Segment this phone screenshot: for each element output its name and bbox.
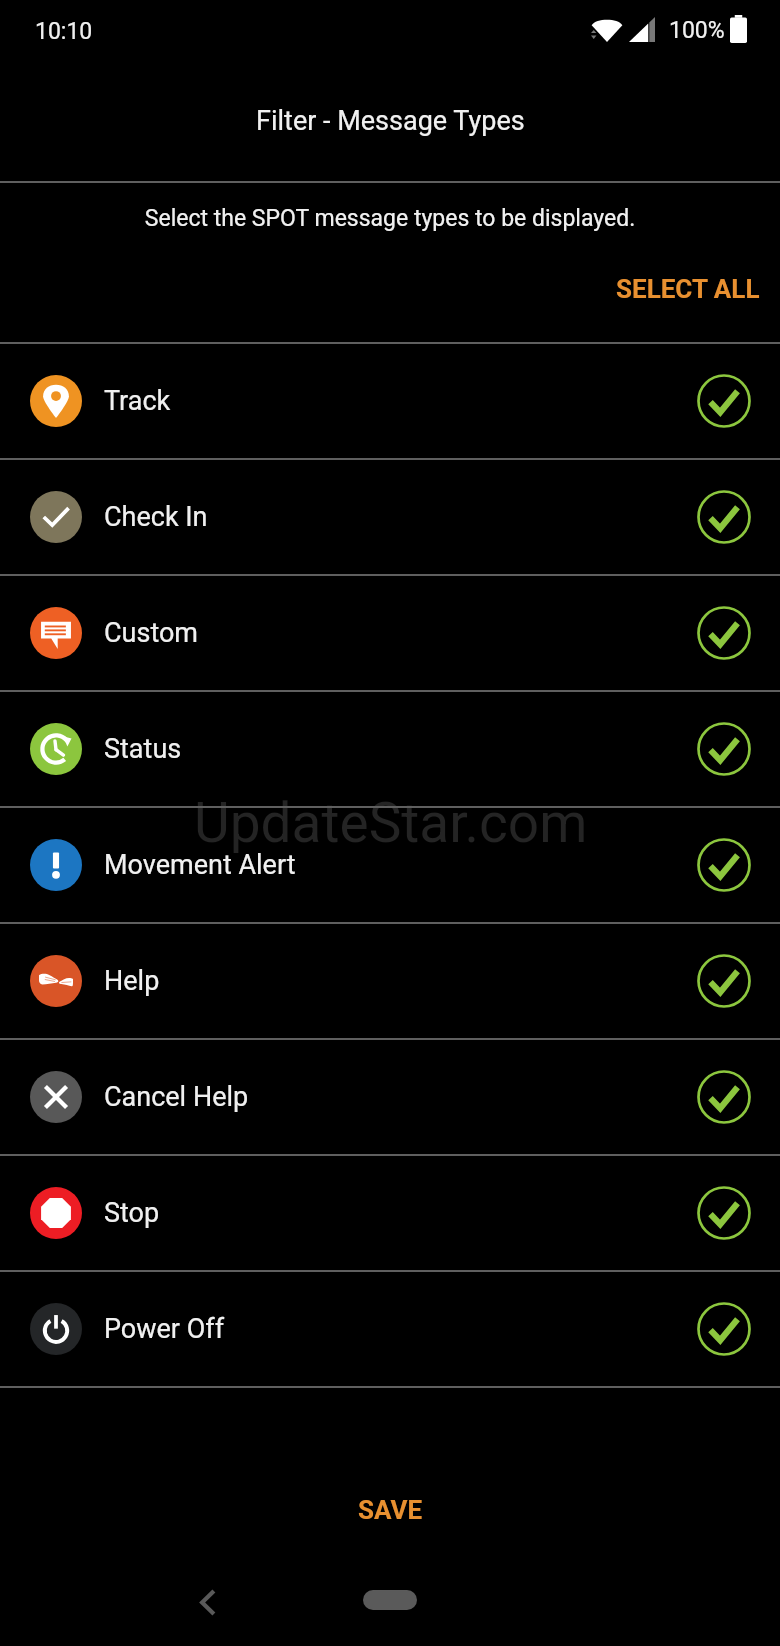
staticText: Filter - Message Types <box>256 105 525 137</box>
staticText: Custom <box>104 617 199 649</box>
button[interactable]: Custom <box>0 576 780 690</box>
button[interactable]: Status <box>0 692 780 806</box>
button[interactable]: Check In <box>0 460 780 574</box>
staticText: UpdateStar.com <box>194 791 588 855</box>
staticText: 100% <box>669 17 725 44</box>
button[interactable]: SAVE <box>330 1485 451 1535</box>
staticText: SAVE <box>358 1495 423 1525</box>
staticText: Select the SPOT message types to be disp… <box>0 205 780 232</box>
button[interactable]: Back <box>182 1576 234 1628</box>
button[interactable]: Track <box>0 344 780 458</box>
staticText: Stop <box>104 1197 160 1229</box>
button[interactable]: Cancel Help <box>0 1040 780 1154</box>
staticText: Status <box>104 733 182 765</box>
staticText: Cancel Help <box>104 1081 249 1113</box>
staticText: Power Off <box>104 1313 225 1345</box>
staticText: Track <box>104 385 171 417</box>
button[interactable]: Stop <box>0 1156 780 1270</box>
staticText: SELECT ALL <box>616 274 760 304</box>
button[interactable]: SELECT ALL <box>594 266 780 312</box>
staticText: Check In <box>104 501 208 533</box>
button[interactable]: Home <box>363 1590 417 1610</box>
button[interactable]: Help <box>0 924 780 1038</box>
staticText: Movement Alert <box>104 849 296 881</box>
staticText: 10:10 <box>35 18 93 45</box>
button[interactable]: Movement Alert <box>0 808 780 922</box>
button[interactable]: Power Off <box>0 1272 780 1386</box>
staticText: Help <box>104 965 160 997</box>
